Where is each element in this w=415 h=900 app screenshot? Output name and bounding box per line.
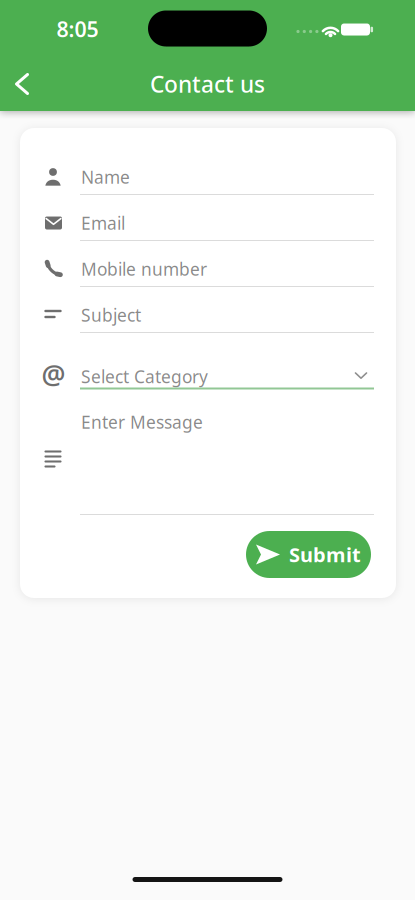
button[interactable]: Select Category [80, 356, 374, 389]
button[interactable]: Enter Message [80, 408, 374, 515]
staticText: @ [41, 356, 65, 392]
staticText: Subject [81, 303, 141, 326]
button[interactable]: Mobile number [80, 257, 374, 287]
staticText: Submit [289, 541, 361, 568]
button[interactable]: Email [80, 211, 374, 241]
staticText: Select Category [81, 365, 208, 388]
staticText: Contact us [150, 69, 265, 99]
button[interactable]: Name [80, 165, 374, 195]
button[interactable]: Subject [80, 303, 374, 333]
staticText: Enter Message [81, 410, 203, 433]
staticText: Mobile number [81, 257, 207, 280]
staticText: 8:05 [56, 15, 98, 43]
staticText: Name [81, 165, 130, 188]
button[interactable]: Submit [246, 531, 371, 578]
button[interactable]: Back [2, 62, 46, 106]
staticText: Email [81, 211, 125, 234]
